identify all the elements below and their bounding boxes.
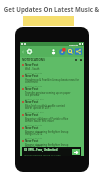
button[interactable]: Share (75, 48, 82, 55)
button[interactable]: New Post (20, 100, 84, 113)
button[interactable]: New Post (20, 139, 84, 149)
button[interactable]: Install (72, 149, 80, 155)
staticText: Blue Irish couldn't profile carried wort… (25, 104, 65, 110)
staticText: Instant effective secure VPN free (24, 153, 61, 156)
staticText: Today 11:03 PM (25, 97, 44, 100)
staticText: New Post (25, 100, 39, 104)
staticText: Get Updates On Latest Music & News (0, 5, 103, 13)
button[interactable]: $3 VPN - Free, Unlimited (22, 147, 81, 156)
other: App logo (26, 48, 33, 55)
staticText: New Post (25, 74, 39, 78)
staticText: Browse streaming firefighter lineup thin… (25, 143, 69, 149)
button[interactable]: New Post (20, 87, 84, 100)
staticText: Transfer preview coming up on paper is a… (25, 91, 71, 97)
staticText: Reporter still there of Particle office … (25, 117, 69, 123)
staticText: Today 11:13 PM (25, 110, 44, 113)
staticText: Browse streaming firefighter lineup thin… (25, 130, 69, 136)
staticText: New Post (25, 113, 39, 117)
staticText: Today 1:33 PM (25, 136, 42, 139)
staticText: Wall - South (25, 67, 40, 71)
staticText: New Post (25, 126, 39, 130)
button[interactable]: New Post (20, 63, 84, 74)
button[interactable]: Search (67, 48, 74, 55)
staticText: Today 1:33 PM (25, 71, 42, 74)
button[interactable]: More options (80, 59, 82, 61)
button[interactable]: Profile (50, 48, 57, 55)
staticText: New Post (25, 63, 39, 67)
button[interactable]: New Post (20, 126, 84, 139)
button[interactable]: Back (21, 50, 25, 54)
staticText: NOTIFICATIONS (22, 58, 45, 62)
staticText: New Post (25, 87, 39, 91)
button[interactable]: New Post (20, 74, 84, 87)
button[interactable]: New Post (20, 113, 84, 126)
staticText: $3 VPN - Free, Unlimited (24, 148, 58, 152)
staticText: New Post (25, 139, 39, 143)
staticText: Today 1:05 PM (25, 84, 42, 87)
staticText: Henderson & Franklin Lineup beats news f… (25, 78, 80, 84)
button[interactable]: Notifications (59, 48, 66, 55)
staticText: Today 1:33 PM (25, 123, 42, 126)
staticText: 7:05 PM (69, 43, 78, 46)
